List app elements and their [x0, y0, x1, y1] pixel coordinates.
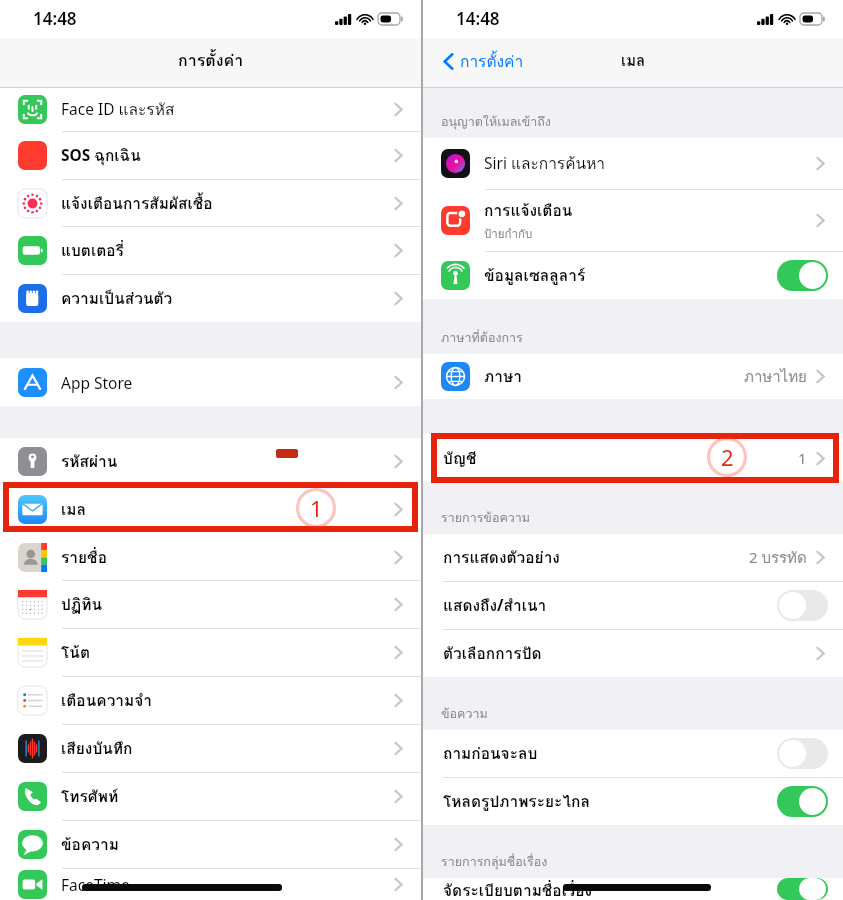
staticText: จัดระเบียบตามชื่อเรื่อง — [443, 878, 593, 900]
staticText: 14:48 — [456, 7, 500, 30]
button[interactable]: ความเป็นส่วนตัว — [0, 275, 421, 322]
button[interactable]: ปฏิทิน — [0, 581, 421, 628]
staticText: ปฏิทิน — [61, 592, 103, 617]
staticText: การแจ้งเตือน — [484, 198, 573, 223]
staticText: เสียงบันทึก — [61, 736, 133, 761]
button[interactable]: On — [777, 260, 828, 291]
staticText: ความเป็นส่วนตัว — [61, 286, 173, 311]
button[interactable]: แจ้งเตือนการสัมผัสเชื้อ — [0, 180, 421, 226]
staticText: ข้อความ — [441, 704, 488, 724]
staticText: ป้ายกำกับ — [484, 225, 533, 243]
button[interactable]: ข้อมูลเซลลูลาร์ — [423, 252, 843, 299]
button[interactable]: App Store — [0, 358, 421, 406]
staticText: ภาษาที่ต้องการ — [441, 328, 523, 348]
button[interactable]: เมล — [0, 484, 421, 534]
button[interactable]: บัญชี — [423, 434, 843, 482]
staticText: เมล — [621, 49, 646, 73]
staticText: SOS ฉุกเฉิน — [61, 143, 141, 168]
button[interactable]: เสียงบันทึก — [0, 725, 421, 772]
button[interactable]: โทรศัพท์ — [0, 773, 421, 820]
staticText: อนุญาตให้เมลเข้าถึง — [441, 112, 551, 132]
staticText: 2 บรรทัด — [749, 546, 807, 570]
button[interactable]: แบตเตอรี่ — [0, 227, 421, 274]
staticText: บัญชี — [443, 446, 477, 471]
staticText: ตัวเลือกการปัด — [443, 641, 542, 666]
staticText: เตือนความจำ — [61, 688, 153, 713]
button[interactable]: On — [777, 878, 828, 900]
button[interactable]: ถามก่อนจะลบ — [423, 730, 843, 777]
staticText: 2 — [721, 442, 734, 472]
button[interactable]: On — [777, 786, 828, 817]
staticText: การตั้งค่า — [178, 48, 244, 73]
staticText: App Store — [61, 372, 133, 393]
staticText: 14:48 — [33, 7, 77, 30]
button[interactable]: การแสดงตัวอย่าง — [423, 534, 843, 581]
staticText: ภาษา — [484, 364, 522, 389]
button[interactable]: Face ID และรหัส — [0, 88, 421, 131]
staticText: การตั้งค่า — [460, 49, 524, 74]
button[interactable]: SOS ฉุกเฉิน — [0, 132, 421, 179]
staticText: FaceTime — [61, 874, 130, 895]
staticText: 1 — [798, 448, 807, 468]
button[interactable]: Off — [777, 738, 828, 769]
staticText: ภาษาไทย — [744, 365, 807, 389]
staticText: Face ID และรหัส — [61, 97, 175, 122]
staticText: การแสดงตัวอย่าง — [443, 545, 560, 570]
button[interactable]: การตั้งค่า — [443, 49, 524, 74]
staticText: เมล — [61, 497, 86, 522]
staticText: แบตเตอรี่ — [61, 238, 124, 263]
staticText: แสดงถึง/สำเนา — [443, 593, 547, 618]
staticText: 1 — [310, 493, 323, 523]
button[interactable]: เตือนความจำ — [0, 677, 421, 724]
staticText: Siri และการค้นหา — [484, 151, 606, 176]
button[interactable]: FaceTime — [0, 869, 421, 900]
staticText: แจ้งเตือนการสัมผัสเชื้อ — [61, 191, 213, 216]
button[interactable]: Siri และการค้นหา — [423, 138, 843, 189]
button[interactable]: ภาษา — [423, 354, 843, 399]
staticText: โน้ต — [61, 640, 90, 665]
staticText: โหลดรูปภาพระยะไกล — [443, 789, 590, 814]
staticText: รายการข้อความ — [441, 508, 531, 528]
staticText: โทรศัพท์ — [61, 784, 119, 809]
staticText: ถามก่อนจะลบ — [443, 741, 538, 766]
button[interactable]: โน้ต — [0, 629, 421, 676]
button[interactable]: ข้อความ — [0, 821, 421, 868]
button[interactable]: การแจ้งเตือน — [423, 190, 843, 251]
button[interactable]: ตัวเลือกการปัด — [423, 630, 843, 677]
staticText: รายชื่อ — [61, 545, 107, 570]
staticText: ข้อมูลเซลลูลาร์ — [484, 263, 586, 288]
button[interactable]: รหัสผ่าน — [0, 438, 421, 484]
staticText: รายการกลุ่มชื่อเรื่อง — [441, 852, 548, 872]
staticText: รหัสผ่าน — [61, 449, 118, 474]
button[interactable]: รายชื่อ — [0, 534, 421, 580]
button[interactable]: โหลดรูปภาพระยะไกล — [423, 778, 843, 825]
button[interactable]: จัดระเบียบตามชื่อเรื่อง — [423, 878, 843, 900]
button[interactable]: Off — [777, 590, 828, 621]
staticText: ข้อความ — [61, 832, 119, 857]
button[interactable]: แสดงถึง/สำเนา — [423, 582, 843, 629]
